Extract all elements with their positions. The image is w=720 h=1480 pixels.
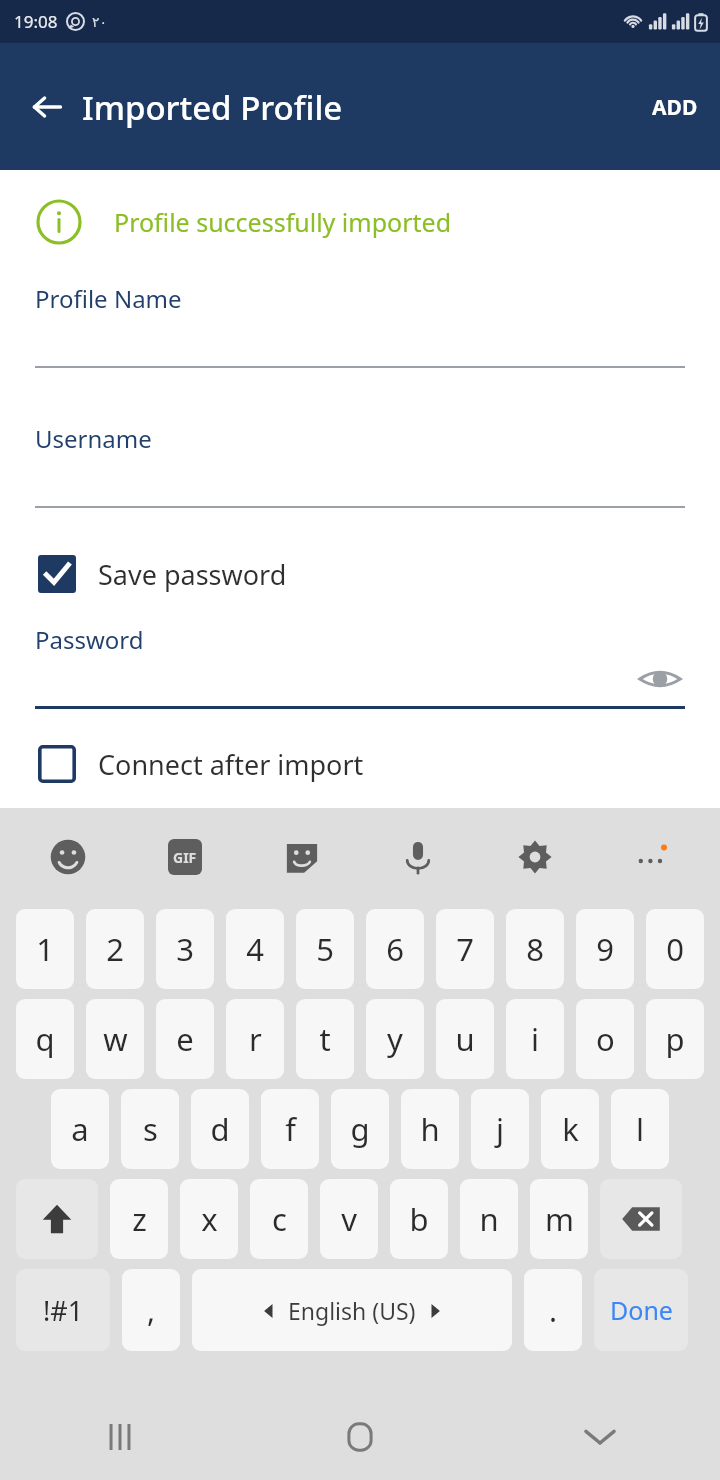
staticText: g (350, 1108, 370, 1150)
button[interactable]: i (506, 999, 564, 1079)
staticText: x (201, 1198, 218, 1240)
staticText: t (319, 1018, 331, 1060)
button[interactable]: z (110, 1179, 168, 1259)
staticText: w (103, 1018, 128, 1060)
button[interactable]: 4 (226, 909, 284, 989)
staticText: . (549, 1290, 558, 1331)
button[interactable]: Hide keyboard (570, 1407, 630, 1467)
button[interactable]: e (156, 999, 214, 1079)
button[interactable]: s (121, 1089, 179, 1169)
button[interactable]: . (524, 1269, 582, 1351)
staticText: 6 (386, 928, 404, 970)
button[interactable]: Stickers (274, 829, 330, 885)
button[interactable]: GIF (157, 829, 213, 885)
staticText: 8 (526, 928, 544, 970)
button[interactable]: y (366, 999, 424, 1079)
staticText: d (210, 1108, 230, 1150)
button[interactable]: b (390, 1179, 448, 1259)
button[interactable]: 2 (86, 909, 144, 989)
button[interactable]: Home (330, 1407, 390, 1467)
button[interactable]: Save password (38, 555, 287, 593)
staticText: k (562, 1108, 579, 1150)
button[interactable]: Done (594, 1269, 688, 1351)
button[interactable]: Recent apps (90, 1407, 150, 1467)
staticText: z (132, 1198, 147, 1240)
staticText: 1 (36, 928, 54, 970)
staticText: Connect after import (98, 746, 364, 783)
button[interactable]: 7 (436, 909, 494, 989)
button[interactable]: 1 (16, 909, 74, 989)
button[interactable]: 6 (366, 909, 424, 989)
staticText: 19:08 (14, 10, 58, 33)
button[interactable]: Keyboard settings (507, 829, 563, 885)
button[interactable]: Back (18, 78, 76, 136)
staticText: Done (610, 1293, 673, 1327)
staticText: Profile Name (35, 282, 182, 315)
staticText: 4 (246, 928, 264, 970)
button[interactable]: Backspace (600, 1179, 682, 1259)
button[interactable]: 0 (646, 909, 704, 989)
staticText: y (387, 1018, 403, 1060)
button[interactable]: n (460, 1179, 518, 1259)
staticText: !#1 (43, 1292, 84, 1329)
button[interactable]: x (180, 1179, 238, 1259)
button[interactable]: English (US) (192, 1269, 512, 1351)
button[interactable]: u (436, 999, 494, 1079)
button[interactable]: f (261, 1089, 319, 1169)
staticText: o (596, 1018, 615, 1060)
button[interactable]: k (541, 1089, 599, 1169)
staticText: Password (35, 623, 144, 656)
button[interactable]: r (226, 999, 284, 1079)
staticText: r (249, 1018, 262, 1060)
staticText: Save password (98, 556, 287, 593)
button[interactable]: q (16, 999, 74, 1079)
button[interactable]: m (530, 1179, 588, 1259)
staticText: s (143, 1108, 158, 1150)
button[interactable]: t (296, 999, 354, 1079)
button[interactable]: !#1 (16, 1269, 110, 1351)
staticText: 3 (176, 928, 194, 970)
button[interactable]: v (320, 1179, 378, 1259)
staticText: , (147, 1290, 156, 1331)
staticText: i (531, 1018, 539, 1060)
staticText: h (420, 1108, 440, 1150)
button[interactable]: p (646, 999, 704, 1079)
button[interactable]: Emoji (40, 829, 96, 885)
staticText: Username (35, 422, 152, 455)
button[interactable]: Voice input (390, 829, 446, 885)
button[interactable]: 8 (506, 909, 564, 989)
staticText: 9 (596, 928, 614, 970)
button[interactable]: h (401, 1089, 459, 1169)
button[interactable]: Show password (632, 830, 684, 882)
button[interactable]: 9 (576, 909, 634, 989)
staticText: ADD (652, 93, 698, 122)
button[interactable]: g (331, 1089, 389, 1169)
button[interactable]: c (250, 1179, 308, 1259)
staticText: 7 (456, 928, 474, 970)
button[interactable]: l (611, 1089, 669, 1169)
staticText: m (545, 1198, 574, 1240)
staticText: q (35, 1018, 55, 1060)
button[interactable]: a (51, 1089, 109, 1169)
button[interactable]: 3 (156, 909, 214, 989)
button[interactable]: d (191, 1089, 249, 1169)
staticText: e (176, 1018, 194, 1060)
button[interactable]: 5 (296, 909, 354, 989)
staticText: a (71, 1108, 89, 1150)
button[interactable]: More options (624, 829, 680, 885)
button[interactable]: , (122, 1269, 180, 1351)
staticText: Profile successfully imported (114, 205, 452, 239)
staticText: ٢٠ (92, 14, 108, 30)
button[interactable]: Connect after import (38, 745, 364, 783)
button[interactable]: w (86, 999, 144, 1079)
button[interactable]: j (471, 1089, 529, 1169)
staticText: p (665, 1018, 685, 1060)
button[interactable]: Shift (16, 1179, 98, 1259)
staticText: b (409, 1198, 429, 1240)
staticText: 2 (106, 928, 124, 970)
staticText: l (636, 1108, 644, 1150)
staticText: f (285, 1108, 296, 1150)
button[interactable]: o (576, 999, 634, 1079)
button[interactable]: ADD (630, 79, 720, 136)
staticText: 5 (316, 928, 334, 970)
